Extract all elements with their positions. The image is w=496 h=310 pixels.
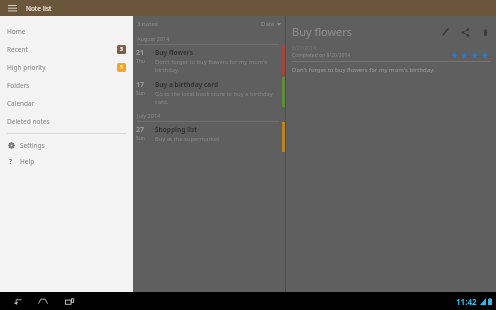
staticText: Don't forget to buy flowers for my mom's… [292,66,435,74]
staticText: Settings [20,141,45,150]
staticText: ? [9,157,13,165]
staticText: 11:42 [456,296,477,307]
staticText: Buy a birthday card [155,80,219,89]
button[interactable]: Delete [479,26,491,38]
staticText: 8/21/2014 [292,45,316,52]
button[interactable]: Back [10,294,24,308]
staticText: 1 [120,64,123,71]
button[interactable]: Recent apps [62,294,76,308]
button[interactable]: Deleted notes [0,112,133,130]
button[interactable]: 21 [133,45,285,77]
staticText: 3 [120,46,123,53]
staticText: Buy flowers [292,24,353,39]
staticText: Calendar [7,99,35,108]
staticText: Sun [136,90,145,97]
staticText: Note list [26,4,52,13]
staticText: Sun [136,135,145,142]
button[interactable]: Edit [439,26,451,38]
staticText: Shopping list [155,125,198,134]
button[interactable]: 17 [133,77,285,109]
button[interactable]: ? [0,153,133,169]
staticText: Go to the local book store to buy a birt… [155,90,278,106]
staticText: Don't forget to buy flowers for my mom's… [155,58,278,74]
staticText: Recent [7,45,28,54]
staticText: Completed on 8/20/2014 [292,52,351,59]
staticText: Buy at the supermarket [155,135,220,143]
button[interactable]: Calendar [0,94,133,112]
staticText: 17 [136,80,145,90]
staticText: 3 notes [137,20,158,28]
button[interactable]: Open navigation drawer [6,2,18,14]
button[interactable]: Home [36,294,50,308]
button[interactable]: Home [0,22,133,40]
button[interactable]: 27 [133,122,285,152]
staticText: Folders [7,81,30,90]
button[interactable]: Share [459,26,471,38]
button[interactable]: Date [261,20,281,28]
staticText: Date [261,20,275,28]
staticText: Home [7,27,26,36]
button[interactable]: Settings [0,137,133,153]
staticText: High priority [7,63,46,72]
staticText: 27 [136,125,145,135]
staticText: Buy flowers [155,48,193,57]
staticText: 21 [136,48,145,58]
button[interactable]: Folders [0,76,133,94]
button[interactable]: High priority [0,58,133,76]
button[interactable]: Recent [0,40,133,58]
staticText: August 2014 [137,35,170,42]
staticText: July 2014 [137,112,161,119]
staticText: Deleted notes [7,117,50,126]
staticText: Help [20,157,35,166]
staticText: Thu [136,58,145,65]
